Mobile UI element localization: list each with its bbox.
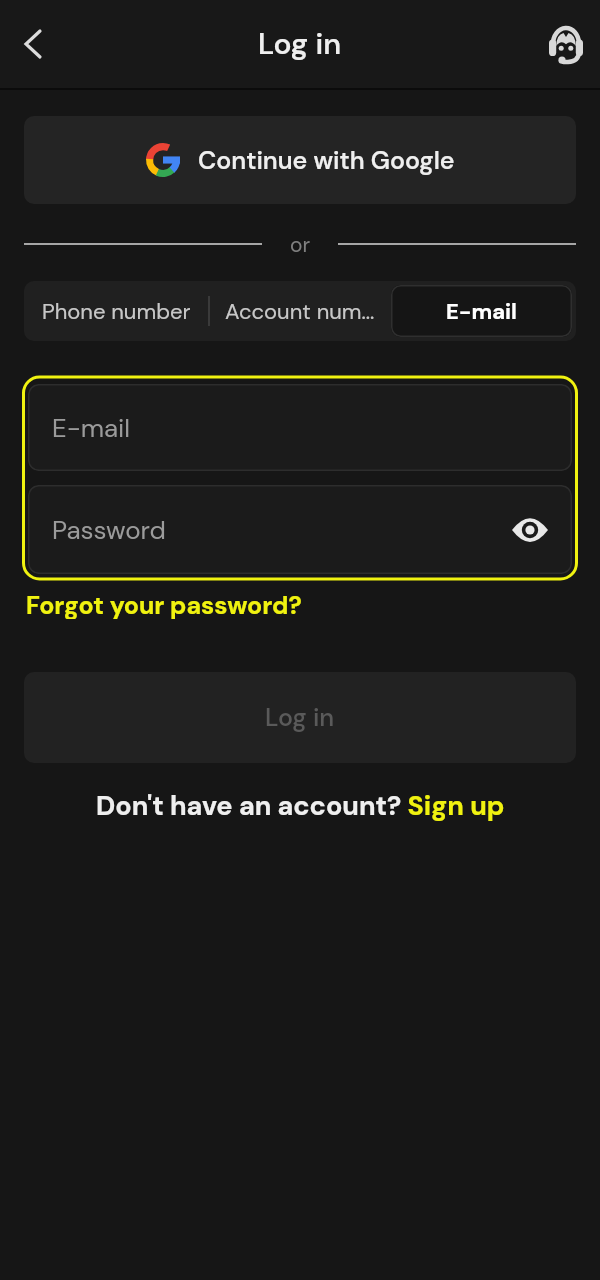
button[interactable]: Phone number: [24, 281, 208, 341]
button[interactable]: E-mail: [28, 384, 572, 471]
button[interactable]: Don't have an account? Sign up: [0, 788, 600, 822]
staticText: Log in: [265, 701, 335, 734]
staticText: Forgot your password?: [26, 589, 302, 619]
staticText: Password: [52, 513, 166, 547]
button[interactable]: Forgot your password?: [26, 589, 302, 619]
staticText: Continue with Google: [198, 144, 455, 177]
staticText: E-mail: [52, 411, 131, 445]
button[interactable]: E-mail: [391, 285, 572, 337]
staticText: E-mail: [446, 297, 517, 326]
staticText: Account num...: [225, 297, 375, 326]
staticText: or: [290, 231, 311, 258]
button[interactable]: Continue with Google: [24, 116, 576, 204]
button[interactable]: [534, 12, 598, 76]
staticText: Don't have an account? Sign up: [96, 788, 505, 822]
button[interactable]: [0, 12, 64, 76]
button[interactable]: Password: [28, 485, 572, 574]
button[interactable]: [502, 502, 558, 558]
button[interactable]: Account num...: [208, 281, 392, 341]
button[interactable]: Log in: [24, 672, 576, 763]
staticText: Log in: [258, 24, 342, 63]
staticText: Phone number: [42, 297, 191, 326]
